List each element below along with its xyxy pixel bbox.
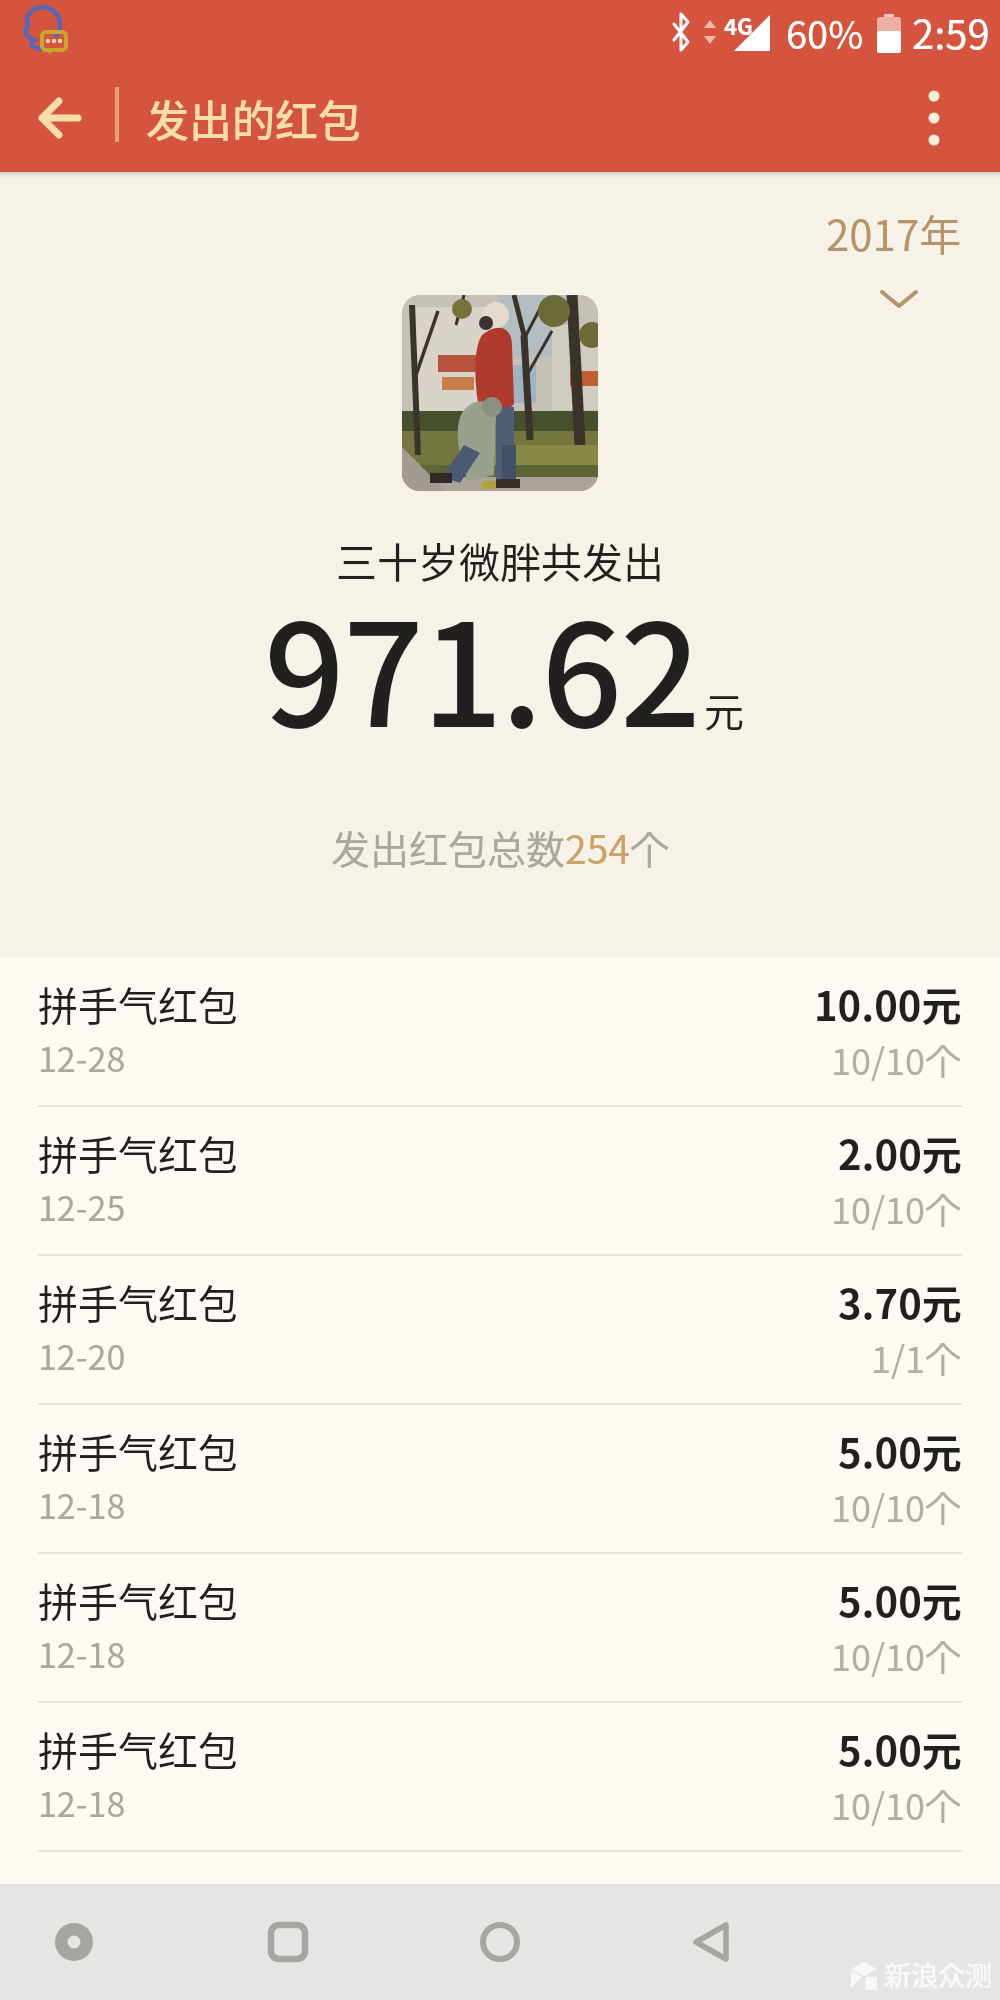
button[interactable]: 拼手气红包 — [0, 1703, 1000, 1852]
staticText: 拼手气红包 — [38, 1571, 238, 1629]
staticText: 10/10个 — [831, 1033, 962, 1085]
staticText: 10/10个 — [831, 1182, 962, 1234]
staticText: 60% — [786, 5, 864, 60]
button[interactable] — [252, 1906, 324, 1978]
staticText: 1/1个 — [871, 1331, 962, 1383]
staticText: 新浪众测 — [884, 1955, 992, 1994]
staticText: 5.00元 — [838, 1571, 962, 1629]
staticText: 12-20 — [38, 1331, 126, 1380]
staticText: 12-18 — [38, 1778, 126, 1827]
button[interactable] — [464, 1906, 536, 1978]
staticText: 10.00元 — [814, 975, 962, 1033]
button[interactable]: 拼手气红包 — [0, 1107, 1000, 1256]
button[interactable] — [676, 1906, 748, 1978]
staticText: 拼手气红包 — [38, 1124, 238, 1182]
button[interactable]: 拼手气红包 — [0, 1554, 1000, 1703]
button[interactable]: 2017年 — [826, 202, 962, 263]
staticText: 拼手气红包 — [38, 1273, 238, 1331]
button[interactable] — [402, 295, 598, 491]
staticText: 元 — [704, 681, 744, 739]
staticText: 发出的红包 — [146, 87, 361, 149]
button[interactable] — [0, 64, 90, 172]
button[interactable]: 拼手气红包 — [0, 1405, 1000, 1554]
staticText: 5.00元 — [838, 1720, 962, 1778]
staticText: 12-18 — [38, 1629, 126, 1678]
button[interactable]: 拼手气红包 — [0, 1256, 1000, 1405]
staticText: 10/10个 — [831, 1629, 962, 1681]
staticText: 12-25 — [38, 1182, 126, 1231]
button[interactable] — [38, 1906, 110, 1978]
staticText: 12-28 — [38, 1033, 126, 1082]
staticText: 12-18 — [38, 1480, 126, 1529]
staticText: 拼手气红包 — [38, 1422, 238, 1480]
staticText: 2.00元 — [838, 1124, 962, 1182]
staticText: 10/10个 — [831, 1778, 962, 1830]
staticText: 拼手气红包 — [38, 975, 238, 1033]
staticText: 10/10个 — [831, 1480, 962, 1532]
button[interactable] — [899, 64, 969, 172]
staticText: 三十岁微胖共发出 — [336, 530, 664, 589]
staticText: 2:59 — [912, 3, 990, 61]
staticText: 3.70元 — [838, 1273, 962, 1331]
button[interactable]: 拼手气红包 — [0, 958, 1000, 1107]
staticText: 971.62 — [264, 562, 700, 768]
staticText: 拼手气红包 — [38, 1720, 238, 1778]
staticText: 4G — [724, 9, 753, 41]
staticText: 发出红包总数254个 — [331, 819, 669, 875]
staticText: 5.00元 — [838, 1422, 962, 1480]
